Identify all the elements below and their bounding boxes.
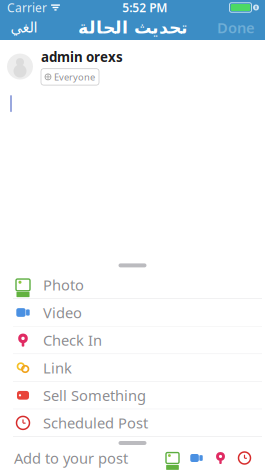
staticText: Sell Something [43, 386, 146, 405]
staticText: تحديث الحالة [77, 18, 187, 37]
button[interactable]: Add photo [165, 450, 180, 465]
button[interactable]: Add video [189, 450, 204, 465]
staticText: Video [43, 303, 82, 322]
staticText: Photo [43, 275, 84, 295]
button[interactable]: Photo [3, 271, 262, 299]
button[interactable]: Done [207, 13, 265, 42]
staticText: Scheduled Post [43, 413, 148, 433]
button[interactable]: Everyone [41, 69, 99, 85]
staticText: Done [217, 18, 255, 37]
button[interactable]: Link [3, 354, 262, 382]
button[interactable]: Sell Something [3, 382, 262, 409]
button[interactable]: الغي [0, 14, 47, 41]
button[interactable]: Scheduled Post [3, 409, 262, 437]
staticText: 5:52 PM [122, 0, 167, 15]
staticText: Link [43, 358, 72, 377]
staticText: Carrier [7, 0, 47, 15]
button[interactable]: Schedule post [237, 450, 252, 465]
button[interactable]: Check In [3, 327, 262, 354]
staticText: الغي [10, 19, 37, 36]
button[interactable]: Check in [213, 450, 228, 465]
staticText: admin orexs [41, 48, 123, 66]
button[interactable]: Video [3, 299, 262, 327]
staticText: Check In [43, 330, 102, 350]
staticText: Add to your post [14, 448, 128, 468]
staticText: Everyone [54, 71, 95, 83]
